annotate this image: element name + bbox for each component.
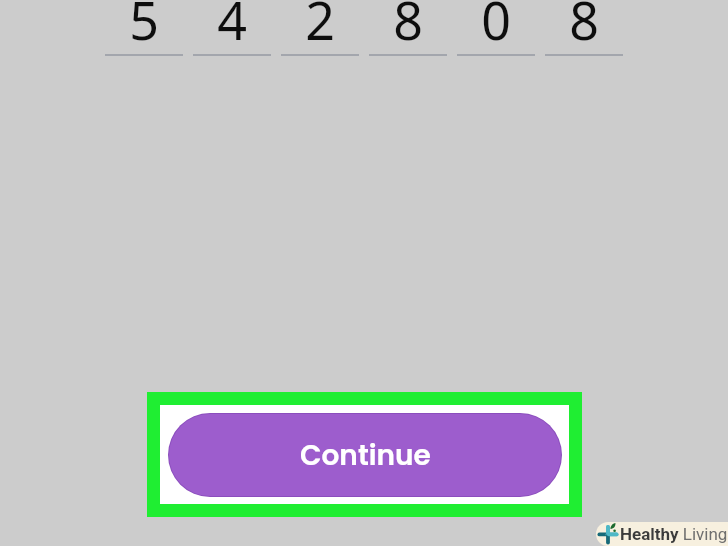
staticText: 8 — [393, 0, 423, 44]
button[interactable]: Verification code digit 6: 8 — [545, 0, 623, 60]
button[interactable]: Verification code digit 2: 4 — [193, 0, 271, 60]
staticText: 5 — [129, 0, 159, 44]
button[interactable]: Verification code digit 4: 8 — [369, 0, 447, 60]
staticText: 4 — [217, 0, 247, 44]
button[interactable]: Verification code digit 5: 0 — [457, 0, 535, 60]
staticText: Healthy Living — [620, 524, 728, 544]
staticText: 8 — [569, 0, 599, 44]
staticText: 0 — [481, 0, 511, 44]
button[interactable]: Verification code digit 3: 2 — [281, 0, 359, 60]
button[interactable]: Continue — [169, 414, 561, 496]
button[interactable]: Verification code digit 1: 5 — [105, 0, 183, 60]
staticText: Continue — [300, 436, 431, 475]
staticText: 2 — [305, 0, 335, 44]
other: Healthy Living logo — [596, 522, 620, 546]
